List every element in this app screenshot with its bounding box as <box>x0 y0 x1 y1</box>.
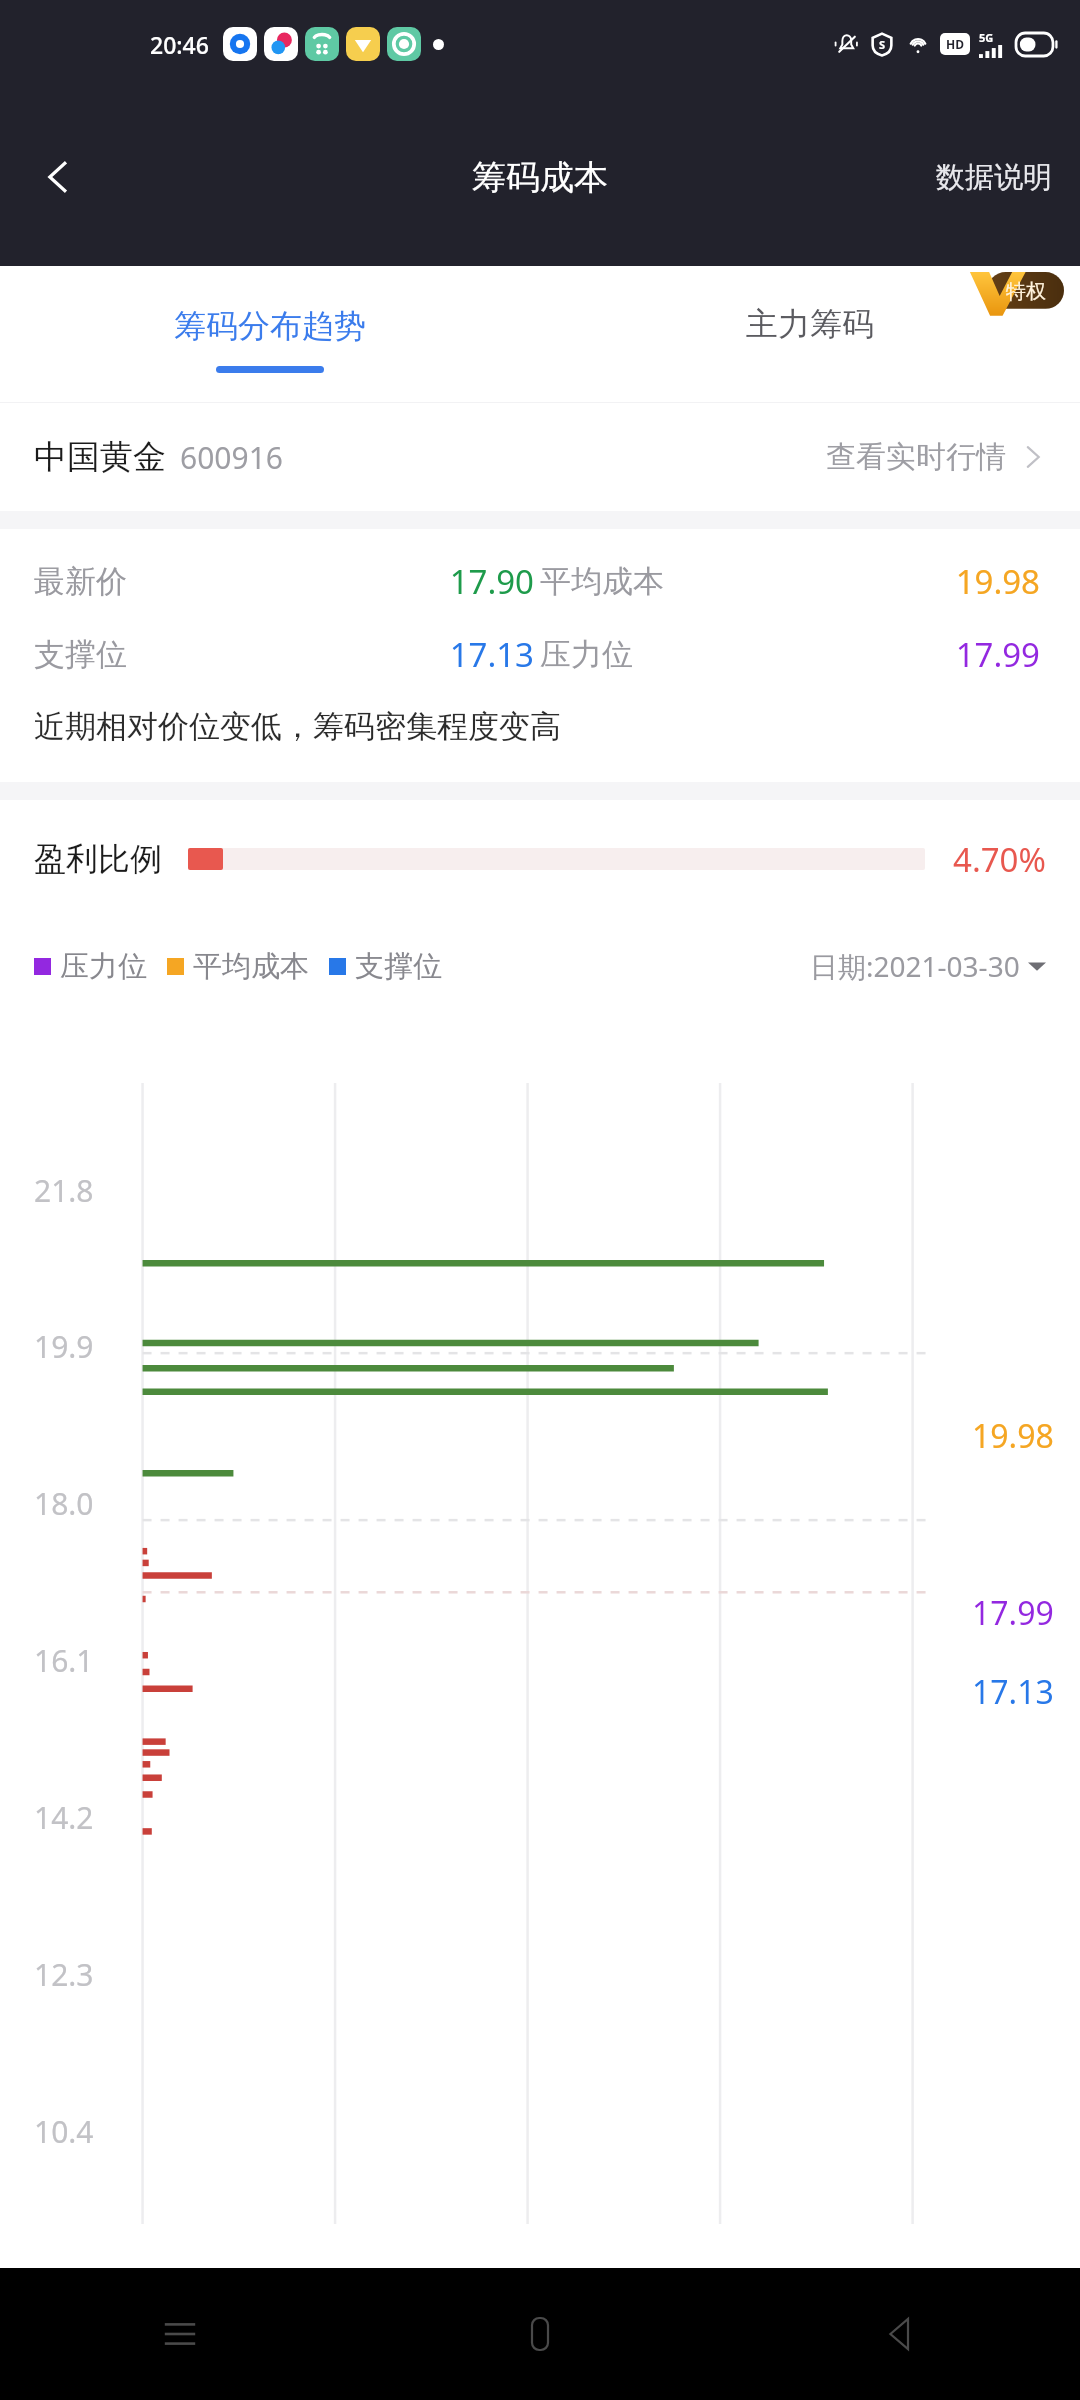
staticText: 查看实时行情 <box>826 438 1006 476</box>
staticText: 16.1 <box>34 1640 94 1681</box>
staticText: 最新价 <box>34 562 127 601</box>
staticText: 平均成本 <box>540 562 664 601</box>
staticText: 18.0 <box>34 1483 94 1524</box>
button[interactable]: Back <box>20 139 96 215</box>
staticText: 17.90 <box>394 559 534 604</box>
staticText: 盈利比例 <box>34 839 162 879</box>
staticText: 14.2 <box>34 1797 94 1838</box>
staticText: 12.3 <box>34 1954 94 1995</box>
button[interactable]: 中国黄金 <box>0 403 1080 511</box>
button[interactable]: Recent apps <box>0 2268 360 2400</box>
staticText: 17.99 <box>972 1591 1054 1635</box>
staticText: 特权 <box>1006 279 1046 304</box>
staticText: 19.9 <box>34 1326 94 1367</box>
button[interactable]: 数据说明 <box>922 143 1066 212</box>
staticText: 近期相对价位变低，筹码密集程度变高 <box>34 707 561 746</box>
staticText: 20:46 <box>150 29 209 60</box>
staticText: 5G <box>979 30 994 45</box>
staticText: 600916 <box>180 437 283 478</box>
staticText: 压力位 <box>60 948 147 985</box>
button[interactable]: 日期:2021-03-30 <box>810 947 1046 985</box>
staticText: 10.4 <box>34 2111 94 2152</box>
staticText: 平均成本 <box>193 948 309 985</box>
staticText: 数据说明 <box>936 159 1052 196</box>
button[interactable]: 主力筹码 <box>540 266 1080 402</box>
staticText: 支撑位 <box>34 635 127 674</box>
staticText: 支撑位 <box>355 948 442 985</box>
button[interactable]: Back <box>720 2268 1080 2400</box>
staticText: 19.98 <box>972 1414 1054 1458</box>
staticText: 21.8 <box>34 1170 94 1211</box>
staticText: 17.13 <box>972 1670 1054 1714</box>
staticText: S <box>879 37 886 52</box>
staticText: 中国黄金 <box>34 436 166 478</box>
staticText: 筹码成本 <box>472 156 608 199</box>
staticText: 日期:2021-03-30 <box>810 947 1020 985</box>
button[interactable]: Home <box>360 2268 720 2400</box>
staticText: 17.13 <box>394 632 534 677</box>
staticText: 主力筹码 <box>746 304 874 344</box>
staticText: HD <box>946 36 964 52</box>
staticText: 筹码分布趋势 <box>174 306 366 346</box>
staticText: 19.98 <box>900 559 1040 604</box>
staticText: 4.70% <box>953 837 1046 882</box>
button[interactable]: 筹码分布趋势 <box>0 266 540 402</box>
staticText: 17.99 <box>900 632 1040 677</box>
staticText: 压力位 <box>540 635 633 674</box>
